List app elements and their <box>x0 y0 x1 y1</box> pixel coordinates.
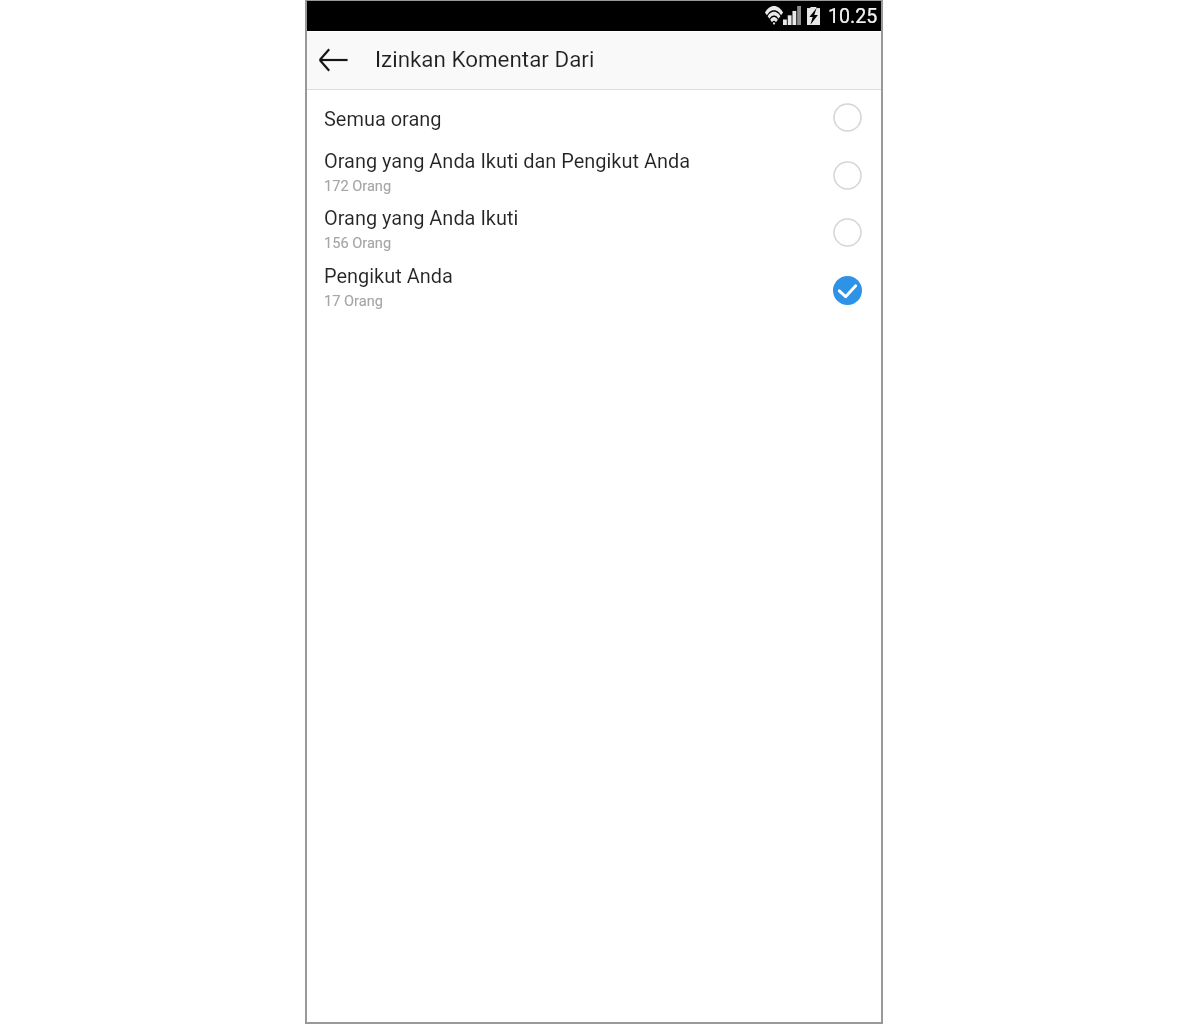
button[interactable]: Orang yang Anda Ikuti, not selected <box>833 218 862 247</box>
button[interactable]: Semua orang, not selected <box>833 103 862 132</box>
staticText: Pengikut Anda <box>324 264 453 287</box>
staticText: 156 Orang <box>324 234 392 251</box>
staticText: Semua orang <box>324 107 442 130</box>
staticText: 10.25 <box>828 5 878 28</box>
button[interactable]: Pengikut Anda, selected <box>833 276 862 305</box>
staticText: 172 Orang <box>324 177 392 194</box>
button[interactable]: Orang yang Anda Ikuti dan Pengikut Anda <box>306 137 882 195</box>
button[interactable]: Pengikut Anda <box>306 253 882 311</box>
staticText: Orang yang Anda Ikuti <box>324 206 519 229</box>
staticText: Orang yang Anda Ikuti dan Pengikut Anda <box>324 149 691 172</box>
staticText: Izinkan Komentar Dari <box>375 46 595 72</box>
button[interactable]: Semua orang <box>306 90 882 137</box>
button[interactable]: Navigate up <box>310 36 358 84</box>
button[interactable]: Orang yang Anda Ikuti dan Pengikut Anda,… <box>833 161 862 190</box>
button[interactable]: Orang yang Anda Ikuti <box>306 195 882 253</box>
staticText: 17 Orang <box>324 292 383 309</box>
